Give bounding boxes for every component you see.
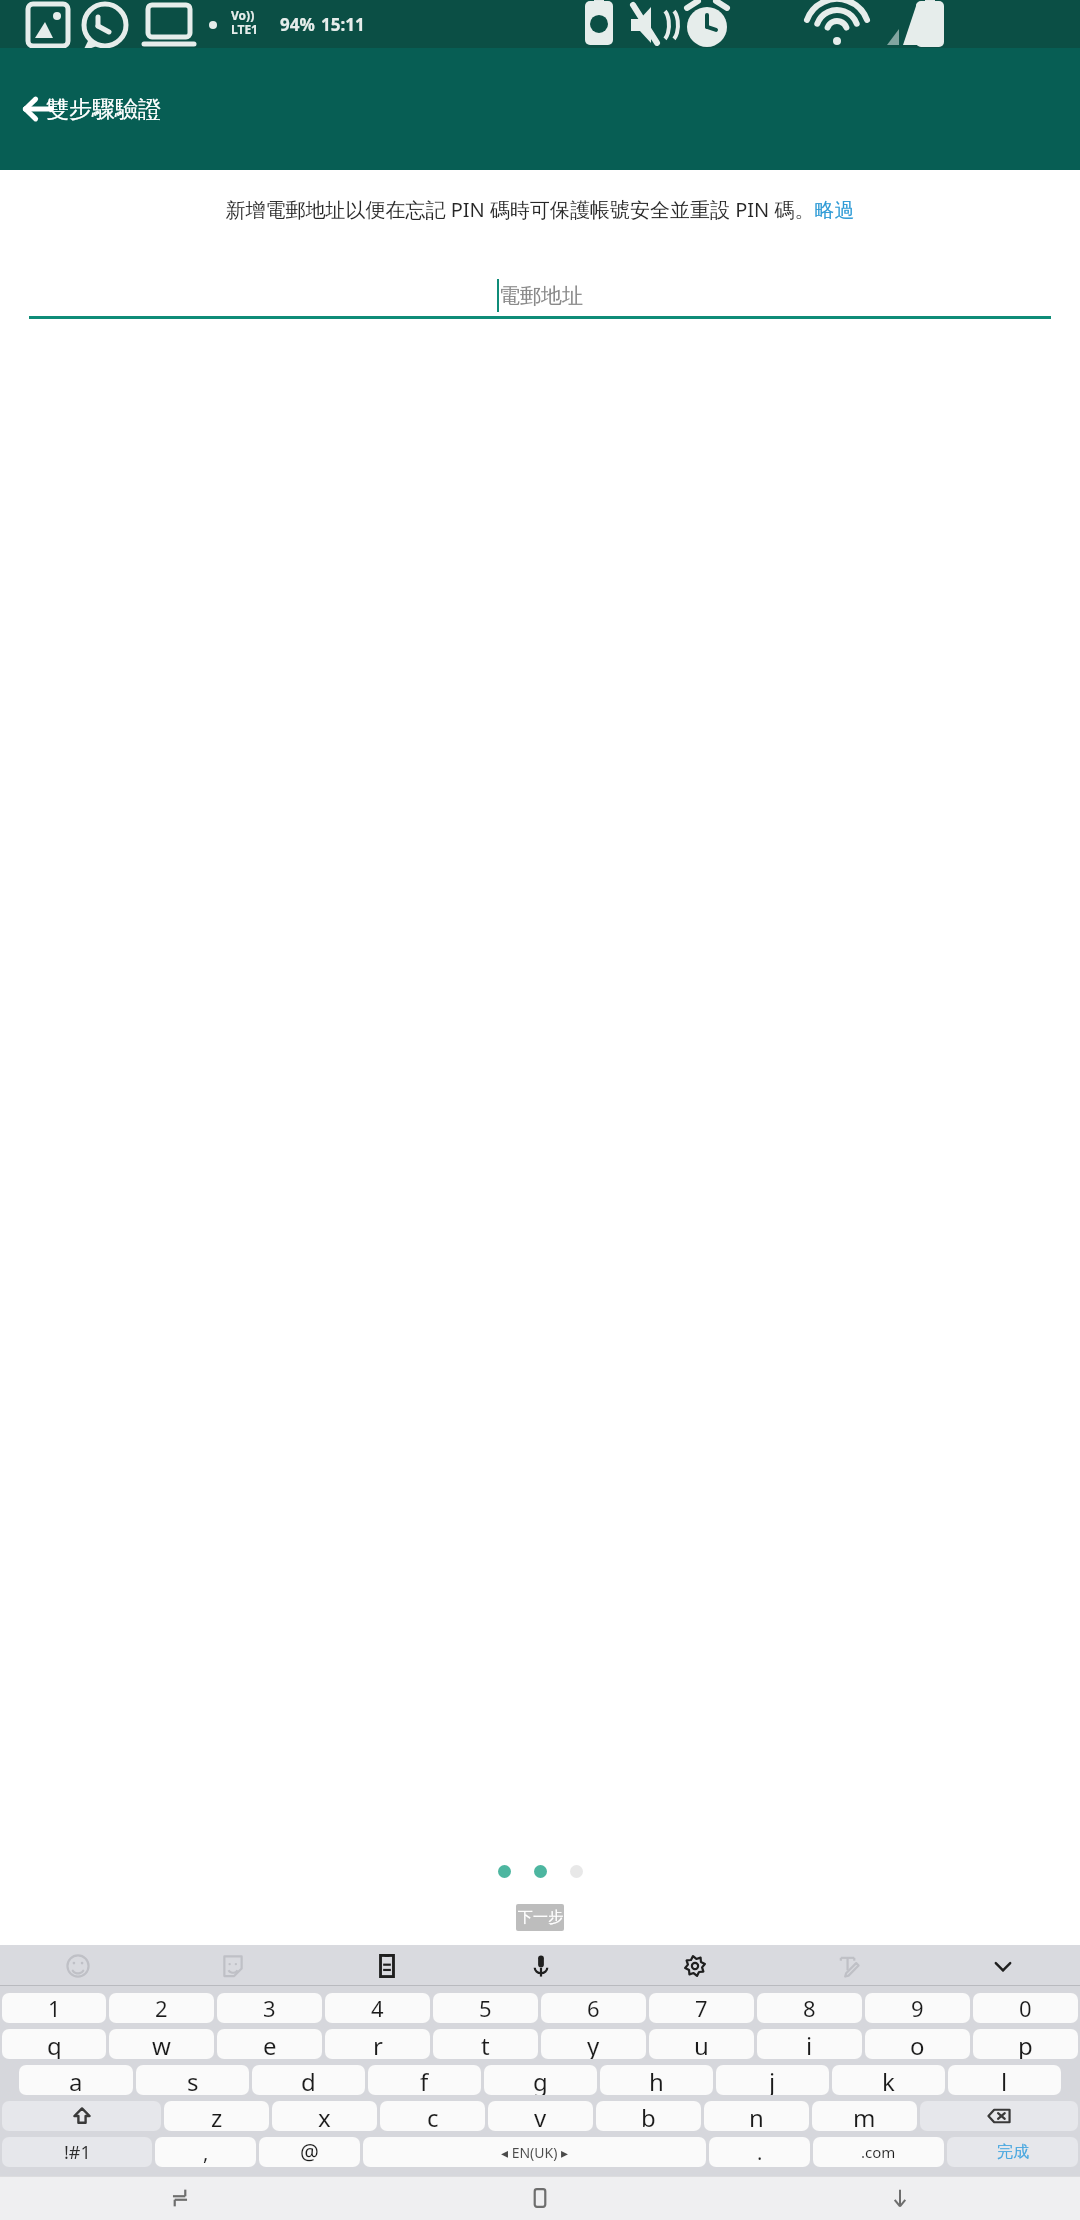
staticText: 6 <box>587 1993 600 2023</box>
button[interactable]: 4 <box>325 1993 430 2023</box>
button[interactable]: c <box>380 2101 485 2131</box>
button[interactable]: k <box>832 2065 945 2095</box>
button[interactable]: i <box>757 2029 862 2059</box>
button[interactable]: m <box>812 2101 917 2131</box>
button[interactable]: Backspace <box>920 2101 1078 2131</box>
button[interactable]: ◂ EN(UK) ▸ <box>363 2137 706 2167</box>
button[interactable]: handwriting <box>772 1945 926 1986</box>
staticText: k <box>882 2065 895 2095</box>
staticText: v <box>534 2101 547 2131</box>
button[interactable]: sticker <box>155 1945 310 1986</box>
button[interactable]: Home <box>360 2176 720 2220</box>
button[interactable]: a <box>19 2065 133 2095</box>
staticText: o <box>910 2029 925 2059</box>
button[interactable]: Shift <box>2 2101 161 2131</box>
staticText: 完成 <box>997 2142 1029 2162</box>
button[interactable]: o <box>865 2029 970 2059</box>
button[interactable]: y <box>541 2029 646 2059</box>
staticText: g <box>533 2065 548 2095</box>
button[interactable]: 8 <box>757 1993 862 2023</box>
staticText: . <box>757 2139 763 2166</box>
staticText: 下一步 <box>518 1908 563 1927</box>
staticText: 4 <box>371 1993 384 2023</box>
staticText: c <box>427 2101 439 2131</box>
staticText: a <box>69 2065 83 2095</box>
staticText: e <box>263 2029 277 2059</box>
staticText: 雙步驟驗證 <box>46 95 161 124</box>
button[interactable]: 電郵地址 <box>29 271 1051 319</box>
staticText: x <box>318 2101 331 2131</box>
button[interactable]: 9 <box>865 1993 970 2023</box>
button[interactable]: 1 <box>2 1993 106 2023</box>
staticText: i <box>806 2029 813 2059</box>
staticText: z <box>211 2101 223 2131</box>
staticText: 15:11 <box>321 13 365 36</box>
staticText: 7 <box>695 1993 708 2023</box>
button[interactable]: z <box>164 2101 269 2131</box>
button[interactable]: q <box>2 2029 106 2059</box>
staticText: l <box>1001 2065 1008 2095</box>
button[interactable]: t <box>433 2029 538 2059</box>
staticText: n <box>749 2101 764 2131</box>
staticText: q <box>47 2029 62 2059</box>
staticText: 0 <box>1019 1993 1032 2023</box>
button[interactable]: 6 <box>541 1993 646 2023</box>
button[interactable]: 完成 <box>947 2137 1078 2167</box>
button[interactable]: 7 <box>649 1993 754 2023</box>
button[interactable]: e <box>217 2029 322 2059</box>
staticText: s <box>187 2065 199 2095</box>
staticText: 8 <box>803 1993 816 2023</box>
button[interactable]: p <box>973 2029 1078 2059</box>
staticText: .com <box>861 2142 896 2162</box>
button[interactable]: 3 <box>217 1993 322 2023</box>
button[interactable]: mic <box>464 1945 618 1986</box>
button[interactable]: n <box>704 2101 809 2131</box>
staticText: b <box>641 2101 656 2131</box>
button[interactable]: 0 <box>973 1993 1078 2023</box>
button[interactable]: u <box>649 2029 754 2059</box>
button[interactable]: r <box>325 2029 430 2059</box>
staticText: 5 <box>479 1993 492 2023</box>
button[interactable]: Recents <box>0 2176 360 2220</box>
staticText: 9 <box>911 1993 924 2023</box>
staticText: w <box>152 2029 171 2059</box>
staticText: @ <box>300 2138 319 2167</box>
button[interactable]: Back <box>8 79 68 139</box>
staticText: h <box>649 2065 664 2095</box>
staticText: u <box>694 2029 709 2059</box>
button[interactable]: @ <box>259 2137 360 2167</box>
button[interactable]: settings <box>618 1945 772 1986</box>
button[interactable]: clipboard <box>310 1945 464 1986</box>
button[interactable]: 2 <box>109 1993 214 2023</box>
staticText: 2 <box>155 1993 168 2023</box>
button[interactable]: h <box>600 2065 713 2095</box>
staticText: 新增電郵地址以便在忘記 PIN 碼時可保護帳號安全並重設 PIN 碼。略過 <box>16 196 1064 223</box>
button[interactable]: v <box>488 2101 593 2131</box>
staticText: Vo)) <box>231 7 255 23</box>
button[interactable]: collapse <box>926 1945 1080 1986</box>
button[interactable]: s <box>136 2065 249 2095</box>
button[interactable]: . <box>709 2137 810 2167</box>
staticText: j <box>769 2065 776 2095</box>
button[interactable]: g <box>484 2065 597 2095</box>
button[interactable]: 下一步 <box>516 1904 564 1931</box>
button[interactable]: , <box>155 2137 256 2167</box>
button[interactable]: f <box>368 2065 481 2095</box>
staticText: LTE1 <box>231 21 258 37</box>
button[interactable]: j <box>716 2065 829 2095</box>
button[interactable]: emoji <box>0 1945 155 1986</box>
staticText: , <box>203 2139 209 2166</box>
button[interactable]: w <box>109 2029 214 2059</box>
staticText: y <box>587 2029 600 2059</box>
button[interactable]: 5 <box>433 1993 538 2023</box>
staticText: t <box>481 2029 490 2059</box>
button[interactable]: !#1 <box>2 2137 152 2167</box>
staticText: 1 <box>48 1993 61 2023</box>
button[interactable]: x <box>272 2101 377 2131</box>
button[interactable]: l <box>948 2065 1061 2095</box>
button[interactable]: Hide keyboard <box>720 2176 1080 2220</box>
button[interactable]: .com <box>813 2137 944 2167</box>
button[interactable]: b <box>596 2101 701 2131</box>
staticText: p <box>1018 2029 1033 2059</box>
button[interactable]: d <box>252 2065 365 2095</box>
